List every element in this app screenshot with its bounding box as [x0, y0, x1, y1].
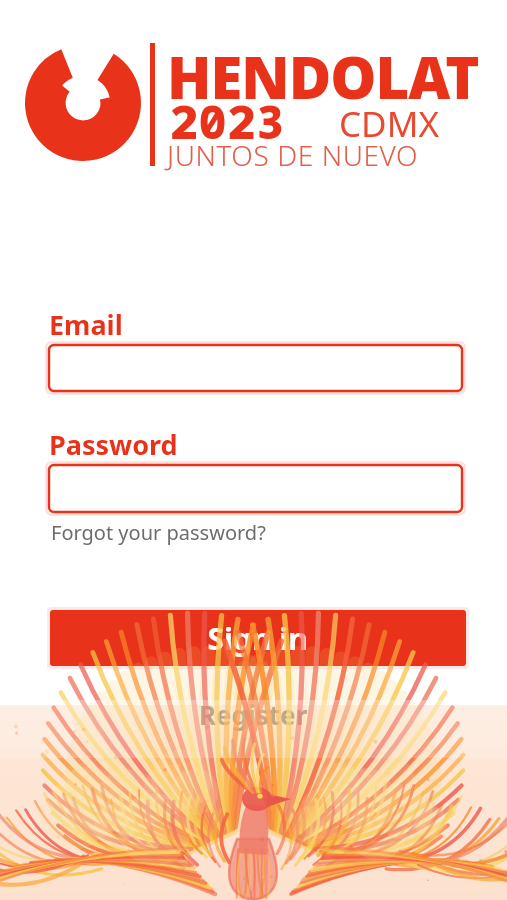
button[interactable]: Register: [188, 694, 320, 726]
button[interactable]: Forgot your password?: [49, 516, 224, 544]
button[interactable]: Email field: [49, 345, 462, 391]
button[interactable]: Password field: [49, 465, 462, 512]
button[interactable]: Sign in: [50, 610, 466, 666]
